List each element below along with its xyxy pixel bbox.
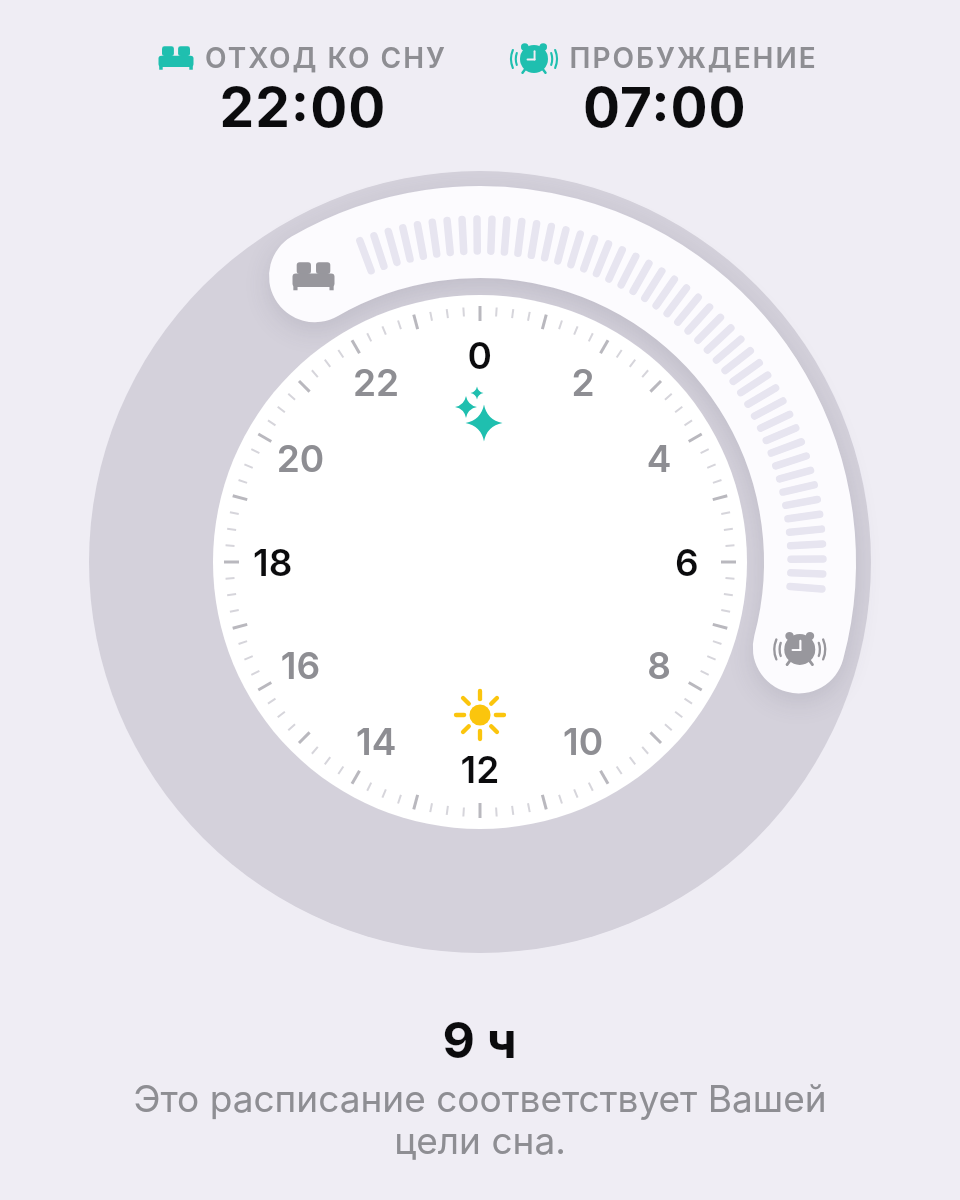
button[interactable] [525,30,805,130]
button[interactable] [266,228,366,328]
button[interactable] [747,597,847,697]
button[interactable] [162,30,444,130]
